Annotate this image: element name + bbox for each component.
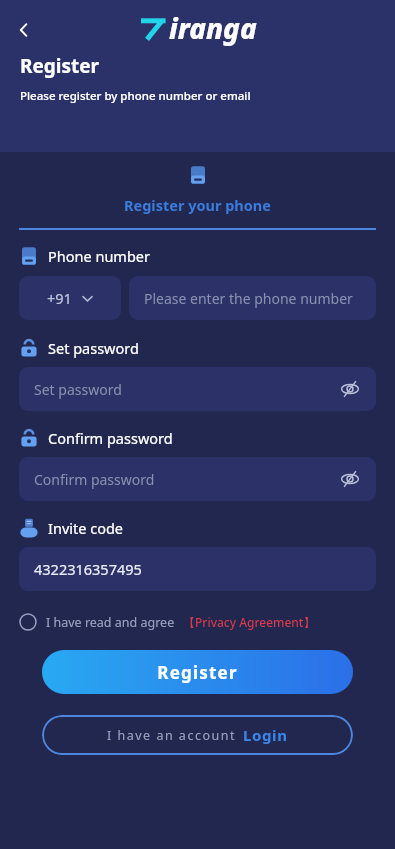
staticText: +91 (47, 288, 72, 308)
button[interactable]: 【Privacy Agreement】 (183, 614, 316, 630)
button[interactable]: Back (6, 12, 42, 48)
staticText: I have read and agree (46, 614, 175, 631)
button[interactable]: I have read and agree (19, 613, 395, 631)
staticText: Set password (48, 338, 139, 358)
button[interactable]: Confirm password (19, 457, 376, 501)
button[interactable]: Set password (19, 367, 376, 411)
staticText: Confirm password (34, 470, 155, 489)
button[interactable]: I have an account (42, 715, 353, 755)
staticText: Please enter the phone number (144, 289, 353, 308)
staticText: Login (243, 725, 288, 745)
staticText: 4322316357495 (34, 559, 142, 579)
staticText: I have an account (107, 727, 236, 744)
button[interactable]: Register (42, 650, 353, 694)
staticText: Please register by phone number or email (20, 88, 251, 104)
staticText: Register (157, 661, 238, 684)
staticText: Confirm password (48, 428, 173, 448)
staticText: Register (20, 53, 100, 79)
button[interactable]: Register your phone (0, 152, 395, 230)
button[interactable]: 4322316357495 (19, 547, 376, 591)
button[interactable]: Show password (335, 464, 365, 494)
button[interactable]: Show password (335, 374, 365, 404)
button[interactable]: +91 (19, 276, 121, 320)
staticText: Phone number (48, 246, 150, 266)
staticText: Invite code (48, 518, 123, 538)
staticText: Set password (34, 380, 122, 399)
staticText: iranga (169, 9, 257, 47)
button[interactable]: Please enter the phone number (129, 276, 376, 320)
staticText: Register your phone (124, 195, 271, 215)
